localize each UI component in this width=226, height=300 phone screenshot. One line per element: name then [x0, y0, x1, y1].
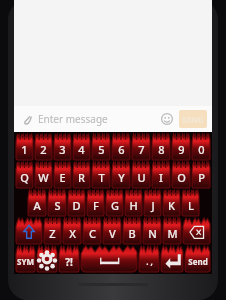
staticText: T: [98, 170, 105, 185]
button[interactable]: X: [63, 218, 81, 244]
button[interactable]: Attach: [19, 111, 35, 127]
staticText: 9: [178, 142, 185, 157]
button[interactable]: ?!: [59, 246, 79, 272]
staticText: L: [188, 198, 194, 213]
staticText: R: [78, 170, 85, 185]
button[interactable]: R: [73, 162, 90, 188]
button[interactable]: Settings: [37, 246, 57, 272]
button[interactable]: D: [68, 190, 85, 216]
staticText: F: [93, 198, 99, 213]
button[interactable]: Emoji: [158, 110, 176, 128]
button[interactable]: I: [152, 162, 170, 188]
button[interactable]: B: [123, 218, 141, 244]
button[interactable]: 2: [35, 134, 52, 160]
staticText: G: [111, 198, 119, 213]
button[interactable]: N: [143, 218, 161, 244]
staticText: N: [148, 226, 157, 241]
staticText: X: [69, 226, 76, 241]
staticText: Q: [20, 170, 29, 185]
staticText: Z: [49, 226, 56, 241]
button[interactable]: Backspace: [183, 218, 210, 244]
staticText: 2: [40, 142, 47, 157]
staticText: H: [129, 198, 138, 213]
button[interactable]: 9: [172, 134, 190, 160]
staticText: 4: [78, 142, 85, 157]
button[interactable]: K: [163, 190, 180, 216]
button[interactable]: 4: [73, 134, 90, 160]
staticText: S: [54, 198, 61, 213]
button[interactable]: 5: [92, 134, 110, 160]
button[interactable]: T: [92, 162, 110, 188]
button[interactable]: Q: [16, 162, 33, 188]
button[interactable]: 1: [16, 134, 33, 160]
staticText: 6: [118, 142, 125, 157]
button[interactable]: Shift: [16, 218, 42, 244]
staticText: 8: [158, 142, 165, 157]
staticText: 1: [21, 142, 28, 157]
button[interactable]: Enter: [161, 246, 183, 272]
button[interactable]: 7: [132, 134, 150, 160]
button[interactable]: A: [28, 190, 46, 216]
staticText: V: [109, 226, 116, 241]
staticText: W: [38, 170, 49, 185]
button[interactable]: SYM: [16, 246, 35, 272]
button[interactable]: C: [83, 218, 101, 244]
button[interactable]: Space: [81, 246, 137, 272]
button[interactable]: V: [103, 218, 121, 244]
staticText: C: [89, 226, 96, 241]
staticText: 3: [59, 142, 66, 157]
button[interactable]: 6: [112, 134, 130, 160]
button[interactable]: O: [172, 162, 190, 188]
button[interactable]: 0: [192, 134, 210, 160]
button[interactable]: M: [163, 218, 181, 244]
staticText: SEND: [182, 114, 204, 125]
button[interactable]: 8: [152, 134, 170, 160]
staticText: E: [59, 170, 66, 185]
button[interactable]: G: [106, 190, 123, 216]
staticText: Enter message: [38, 112, 108, 126]
button[interactable]: P: [192, 162, 210, 188]
staticText: ?!: [65, 255, 73, 269]
staticText: P: [198, 170, 205, 185]
button[interactable]: L: [182, 190, 199, 216]
button[interactable]: W: [35, 162, 52, 188]
staticText: D: [72, 198, 81, 213]
staticText: 0: [198, 142, 205, 157]
staticText: A: [33, 198, 41, 213]
staticText: K: [168, 198, 175, 213]
button[interactable]: E: [54, 162, 71, 188]
button[interactable]: 3: [54, 134, 71, 160]
staticText: M: [167, 226, 178, 241]
staticText: Y: [118, 170, 125, 185]
button[interactable]: S: [48, 190, 66, 216]
staticText: J: [151, 198, 155, 213]
staticText: Send: [188, 256, 208, 267]
staticText: U: [137, 170, 146, 185]
button[interactable]: Send: [185, 246, 210, 272]
button[interactable]: Z: [44, 218, 61, 244]
staticText: SYM: [17, 256, 34, 267]
staticText: 5: [98, 142, 105, 157]
button[interactable]: Y: [112, 162, 130, 188]
button[interactable]: SEND: [179, 110, 207, 128]
staticText: . ,: [146, 256, 153, 267]
button[interactable]: F: [87, 190, 104, 216]
staticText: B: [128, 226, 136, 241]
button[interactable]: H: [125, 190, 142, 216]
button[interactable]: U: [132, 162, 150, 188]
button[interactable]: . ,: [139, 246, 159, 272]
staticText: 7: [138, 142, 145, 157]
button[interactable]: J: [144, 190, 161, 216]
staticText: O: [177, 170, 186, 185]
staticText: I: [159, 170, 163, 185]
